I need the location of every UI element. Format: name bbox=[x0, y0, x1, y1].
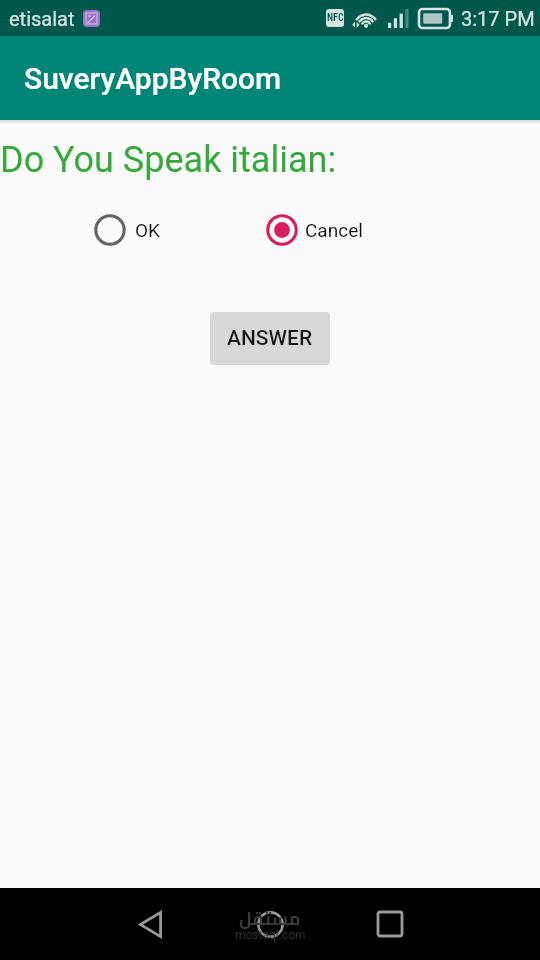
staticText: مستقل bbox=[239, 902, 301, 936]
staticText: NFC bbox=[327, 12, 344, 24]
button[interactable]: OK bbox=[94, 214, 160, 246]
staticText: mostaql.com bbox=[235, 928, 306, 942]
button[interactable]: ANSWER bbox=[210, 312, 330, 365]
button[interactable]: Back bbox=[90, 888, 210, 960]
staticText: Cancel bbox=[305, 219, 363, 241]
staticText: etisalat bbox=[9, 7, 75, 30]
staticText: Do You Speak italian: bbox=[0, 139, 337, 181]
button[interactable]: Cancel bbox=[266, 214, 363, 246]
staticText: ANSWER bbox=[227, 326, 313, 351]
staticText: OK bbox=[135, 219, 160, 241]
staticText: 3:17 PM bbox=[461, 7, 535, 30]
button[interactable]: Recents bbox=[330, 888, 450, 960]
staticText: SuveryAppByRoom bbox=[24, 61, 282, 96]
button[interactable]: Home bbox=[210, 888, 330, 960]
